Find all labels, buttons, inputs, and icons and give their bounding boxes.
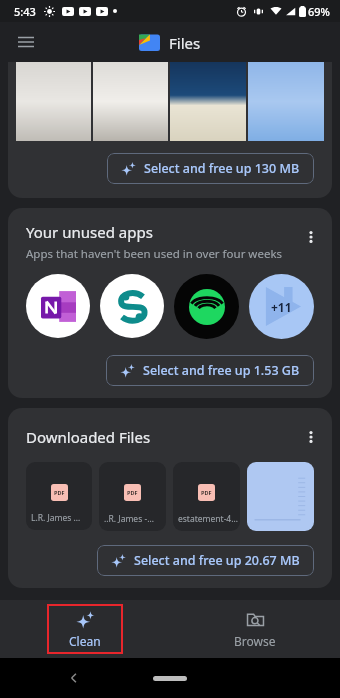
- staticText: estatement-4…: [178, 513, 238, 525]
- button[interactable]: 11 more apps: [249, 274, 314, 339]
- button[interactable]: Shazam-like app: [100, 274, 164, 338]
- staticText: Select and free up 130 MB: [144, 160, 300, 177]
- button[interactable]: Photo thumbnail: [16, 62, 91, 141]
- staticText: +11: [271, 299, 292, 315]
- button[interactable]: Clean: [47, 604, 123, 654]
- staticText: Browse: [234, 633, 276, 649]
- button[interactable]: More options: [296, 222, 326, 252]
- staticText: Downloaded Files: [26, 427, 296, 447]
- button[interactable]: Photo thumbnail: [248, 62, 324, 141]
- staticText: Apps that haven't been used in over four…: [26, 246, 283, 262]
- button[interactable]: Select and free up 20.67 MB: [97, 545, 314, 576]
- staticText: Files: [169, 33, 201, 53]
- staticText: PDF: [54, 489, 65, 496]
- button[interactable]: Select and free up 1.53 GB: [106, 355, 314, 386]
- button[interactable]: Browse: [170, 600, 340, 658]
- button[interactable]: More options: [296, 422, 326, 452]
- button[interactable]: Spotify: [174, 274, 239, 339]
- button[interactable]: Document preview: [247, 462, 314, 531]
- button[interactable]: PDF: [99, 462, 166, 531]
- button[interactable]: Open navigation menu: [8, 24, 44, 60]
- staticText: 5:43: [14, 4, 36, 19]
- button[interactable]: PDF: [26, 462, 92, 530]
- button[interactable]: Photo thumbnail: [170, 62, 246, 141]
- staticText: ..R. James -…: [104, 513, 154, 525]
- staticText: Your unused apps: [26, 222, 153, 242]
- staticText: Select and free up 20.67 MB: [134, 552, 300, 569]
- staticText: Clean: [69, 633, 101, 649]
- staticText: 69%: [308, 4, 330, 19]
- button[interactable]: PDF: [173, 462, 240, 531]
- staticText: PDF: [127, 489, 138, 496]
- button[interactable]: Select and free up 130 MB: [107, 153, 314, 184]
- button[interactable]: Photo thumbnail: [93, 62, 168, 141]
- staticText: L.R. James …: [31, 512, 81, 524]
- staticText: Select and free up 1.53 GB: [143, 362, 300, 379]
- button[interactable]: OneNote: [26, 274, 90, 338]
- staticText: PDF: [201, 489, 212, 496]
